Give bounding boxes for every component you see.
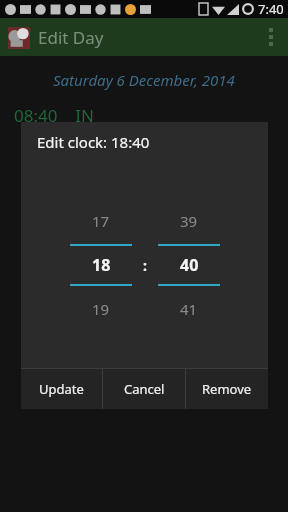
button[interactable]: Update	[21, 369, 102, 409]
staticText: 39	[180, 211, 198, 231]
staticText: 19	[92, 299, 110, 319]
staticText: 17	[92, 211, 110, 231]
staticText: Update	[39, 380, 84, 398]
button[interactable]: More options	[254, 18, 288, 56]
button[interactable]: 40	[158, 246, 220, 284]
staticText: :	[143, 256, 147, 275]
button[interactable]: 39	[158, 206, 220, 236]
staticText: 18	[92, 254, 111, 276]
button[interactable]: 17	[70, 206, 132, 236]
button[interactable]: 19	[70, 294, 132, 324]
button[interactable]: 41	[158, 294, 220, 324]
staticText: Edit Day	[38, 26, 104, 49]
staticText: Edit clock: 18:40	[37, 132, 150, 152]
staticText: Remove	[202, 380, 252, 398]
button[interactable]: Cancel	[103, 369, 185, 409]
staticText: 40	[180, 254, 199, 276]
staticText: 41	[180, 299, 198, 319]
staticText: Cancel	[124, 380, 165, 398]
staticText: 7:40	[258, 0, 284, 18]
staticText: Saturday 6 December, 2014	[53, 70, 235, 90]
button[interactable]: 18	[70, 246, 132, 284]
button[interactable]: Remove	[186, 369, 268, 409]
staticText: 08:40 IN	[14, 104, 94, 127]
